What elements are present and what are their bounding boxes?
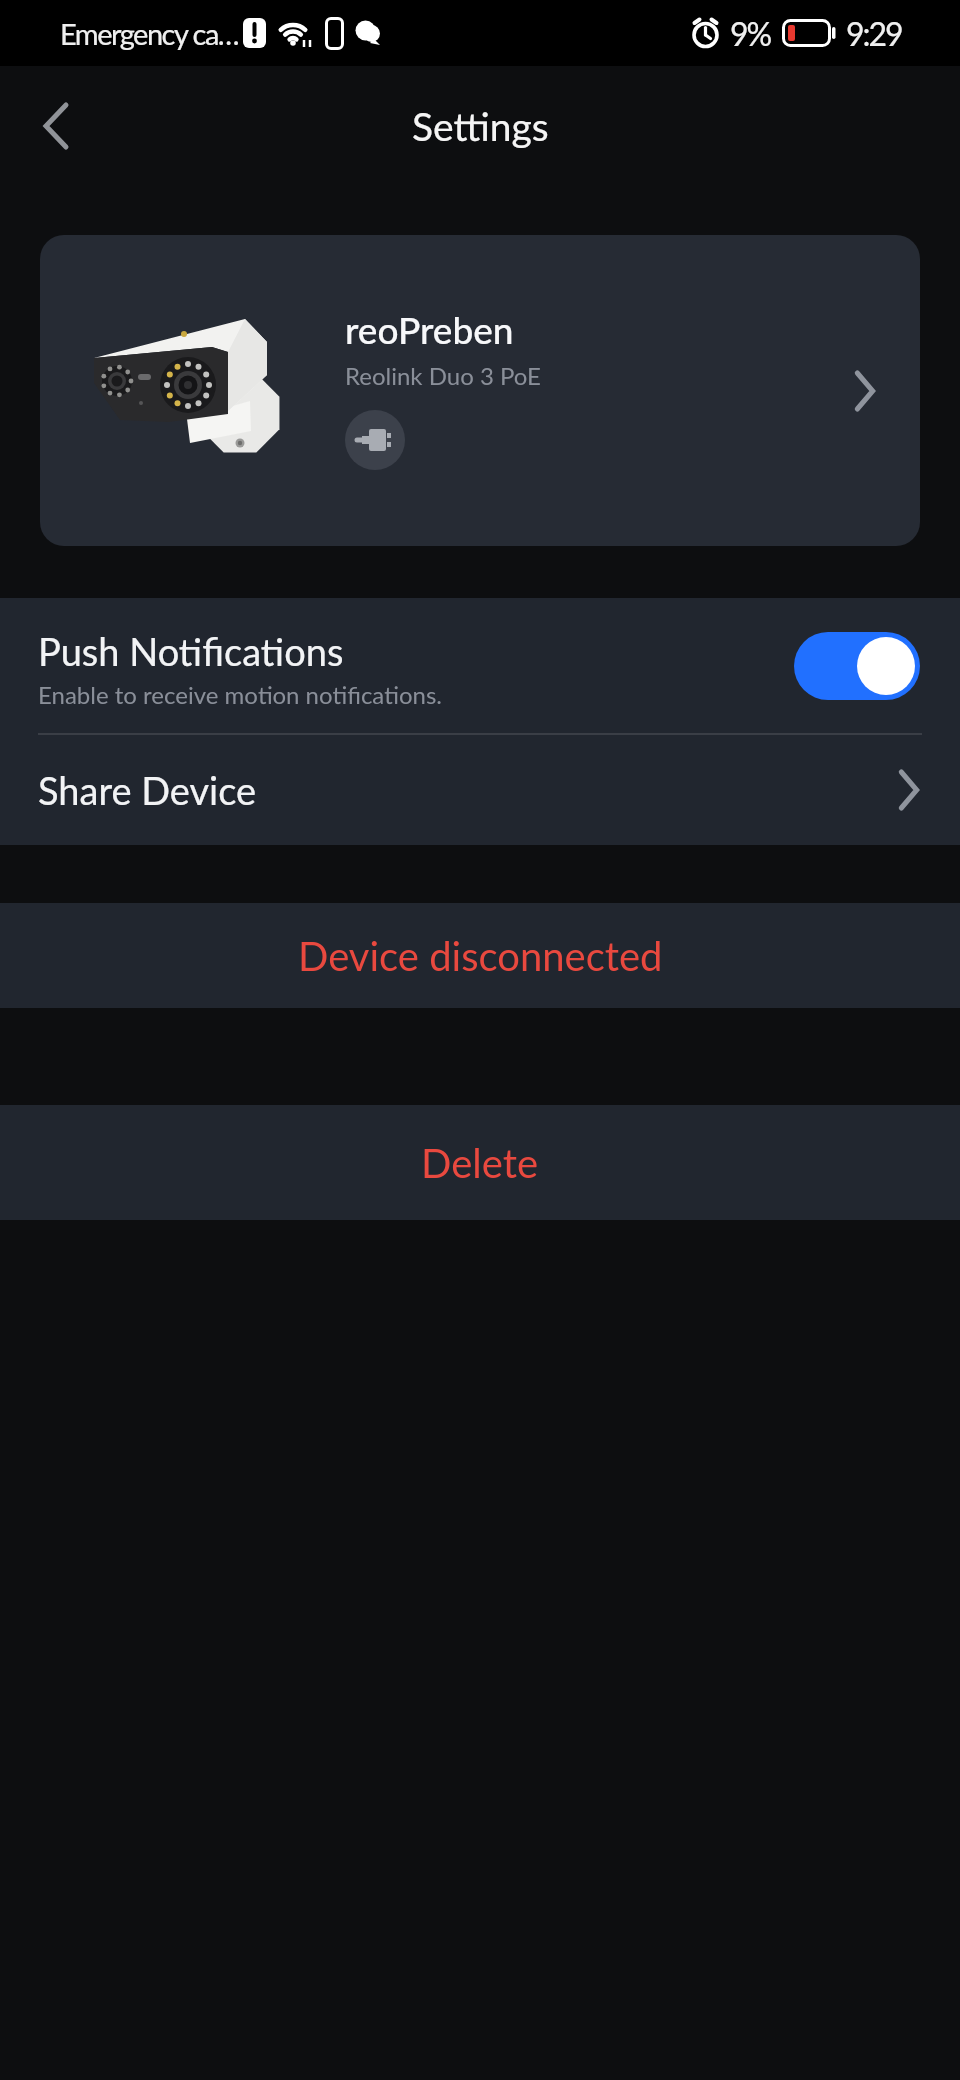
staticText: Push Notifications (38, 628, 344, 674)
staticText: 9:29 (846, 14, 902, 52)
staticText: 9% (730, 14, 771, 52)
staticText: Enable to receive motion notifications. (38, 680, 442, 709)
button[interactable]: reoPreben (40, 235, 920, 546)
button[interactable] (794, 632, 920, 700)
staticText: Emergency ca… (60, 16, 239, 51)
staticText: Delete (421, 1139, 539, 1187)
button[interactable] (26, 96, 86, 156)
staticText: Device disconnected (298, 932, 663, 980)
staticText: reoPreben (345, 307, 514, 351)
button[interactable]: Device disconnected (0, 903, 960, 1008)
button[interactable]: Delete (0, 1105, 960, 1220)
staticText: Settings (412, 103, 549, 150)
button[interactable]: Share Device (38, 735, 920, 845)
staticText: Reolink Duo 3 PoE (345, 361, 541, 390)
staticText: Share Device (38, 767, 257, 813)
